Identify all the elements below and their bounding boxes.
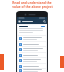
button[interactable]: Search — [43, 20, 46, 23]
button[interactable] — [18, 64, 46, 68]
button[interactable] — [18, 47, 46, 52]
button[interactable]: Menu — [17, 17, 47, 24]
staticText: Read and understand the — [12, 1, 52, 5]
button[interactable] — [18, 36, 46, 41]
button[interactable] — [18, 25, 46, 35]
button[interactable] — [18, 42, 46, 46]
button[interactable] — [18, 53, 46, 57]
button[interactable] — [18, 58, 46, 63]
button[interactable]: Menu — [18, 20, 21, 23]
button[interactable] — [18, 69, 46, 72]
staticText: value of the above project — [12, 5, 53, 9]
